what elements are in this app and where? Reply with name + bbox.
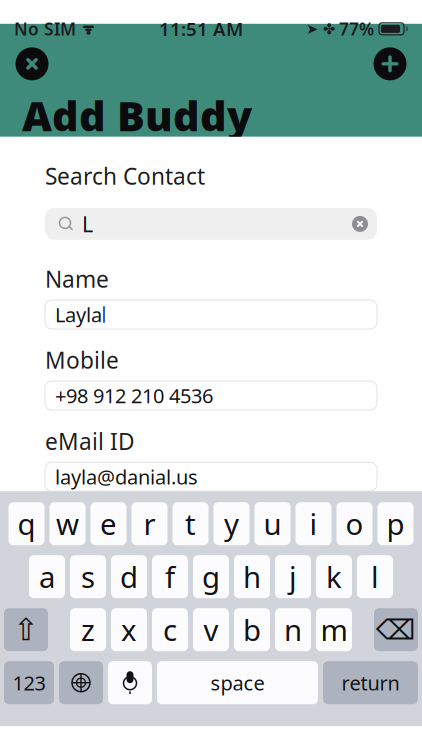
staticText: z [81,610,95,649]
staticText: n [284,610,302,649]
staticText: +98 912 210 4536 [55,382,213,409]
button[interactable]: w [49,502,85,545]
staticText: p [386,504,404,543]
staticText: j [289,557,297,596]
button[interactable]: a [29,555,65,598]
staticText: h [243,557,261,596]
staticText: v [203,610,218,649]
staticText: q [17,504,35,543]
button[interactable]: Next keyboard [59,661,103,704]
staticText: Mobile [45,345,119,375]
button[interactable]: 123 [4,661,54,704]
staticText: layla@danial.us [55,463,198,490]
button[interactable]: q [8,502,44,545]
staticText: Name [45,264,109,294]
button[interactable]: Clear search [343,208,377,240]
staticText: b [243,610,261,649]
staticText: Search Contact [45,161,205,191]
button[interactable]: e [90,502,126,545]
staticText: ➤ [306,20,318,37]
button[interactable]: Delete [374,608,418,651]
staticText: 11:51 AM [159,16,243,41]
staticText: g [202,557,220,596]
button[interactable]: k [316,555,352,598]
button[interactable]: l [357,555,393,598]
button[interactable]: f [152,555,188,598]
staticText: i [309,504,317,543]
staticText: eMail ID [45,426,135,456]
staticText: space [210,669,264,696]
button[interactable]: j [275,555,311,598]
staticText: f [165,557,175,596]
button[interactable]: i [295,502,331,545]
button[interactable]: c [152,608,188,651]
staticText: L [82,210,93,238]
staticText: ⌫ [376,614,416,646]
button[interactable]: d [111,555,147,598]
button[interactable]: n [275,608,311,651]
button[interactable]: p [377,502,413,545]
staticText: 77% [339,17,374,40]
button[interactable]: m [316,608,352,651]
button[interactable]: y [213,502,249,545]
button[interactable]: Dictate [108,661,152,704]
staticText: return [341,669,399,696]
staticText: Layla [55,301,102,328]
staticText: No SIM [14,17,76,40]
staticText: l [371,557,379,596]
staticText: c [163,610,177,649]
staticText: y [224,504,239,543]
staticText: t [185,504,196,543]
staticText: ✤ [323,20,335,37]
button[interactable]: layla@danial.us [45,462,377,491]
staticText: Add Buddy [22,88,252,143]
button[interactable]: v [193,608,229,651]
staticText: a [39,557,55,596]
staticText: s [81,557,95,596]
button[interactable]: o [336,502,372,545]
staticText: d [120,557,138,596]
button[interactable]: t [172,502,208,545]
staticText: x [121,610,137,649]
button[interactable]: +98 912 210 4536 [45,381,377,410]
staticText: 123 [12,669,45,696]
button[interactable]: return [323,661,418,704]
button[interactable]: z [70,608,106,651]
button[interactable]: Layla [45,300,377,329]
button[interactable]: b [234,608,270,651]
staticText: e [100,504,117,543]
button[interactable]: space [157,661,318,704]
staticText: k [326,557,342,596]
staticText: o [345,504,363,543]
button[interactable]: x [111,608,147,651]
button[interactable]: h [234,555,270,598]
staticText: w [56,504,79,543]
button[interactable]: g [193,555,229,598]
staticText: m [320,610,347,649]
button[interactable]: Shift [4,608,48,651]
button[interactable]: Close [10,44,54,84]
button[interactable]: u [254,502,290,545]
button[interactable]: Add [368,44,412,84]
staticText: ⇧ [13,612,39,647]
button[interactable]: r [131,502,167,545]
button[interactable]: s [70,555,106,598]
staticText: u [263,504,281,543]
staticText: r [143,504,155,543]
